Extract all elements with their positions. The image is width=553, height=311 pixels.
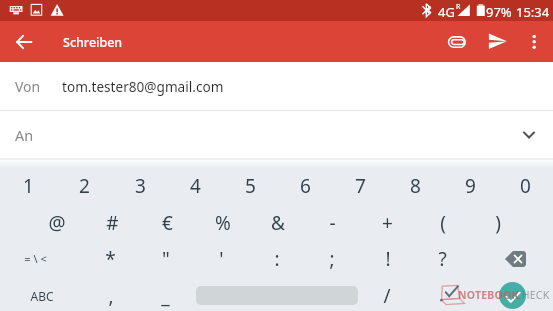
- staticText: 15:34: [516, 3, 550, 21]
- staticText: 2: [79, 173, 90, 199]
- staticText: 4: [190, 173, 201, 199]
- button[interactable]: 3: [112, 167, 168, 204]
- button[interactable]: Attach: [442, 28, 470, 56]
- staticText: Von: [15, 77, 41, 96]
- button[interactable]: +: [360, 204, 415, 241]
- button[interactable]: -: [305, 204, 360, 241]
- button[interactable]: ABC: [0, 277, 83, 311]
- button[interactable]: Backspace: [470, 240, 553, 277]
- staticText: %: [215, 210, 231, 236]
- staticText: 9: [465, 173, 476, 199]
- button[interactable]: ,: [83, 277, 138, 311]
- staticText: tom.tester80@gmail.com: [62, 77, 224, 96]
- staticText: !: [385, 246, 391, 272]
- button[interactable]: Send: [484, 28, 512, 56]
- staticText: 7: [355, 173, 366, 199]
- staticText: 6: [300, 173, 311, 199]
- staticText: _: [161, 283, 170, 309]
- staticText: -: [329, 210, 336, 236]
- staticText: (: [440, 210, 446, 236]
- button[interactable]: :: [249, 240, 304, 277]
- button[interactable]: An: [0, 111, 553, 159]
- button[interactable]: 4: [168, 167, 223, 204]
- button[interactable]: &: [250, 204, 305, 241]
- staticText: CHECK: [515, 288, 550, 302]
- button[interactable]: #: [85, 204, 140, 241]
- button[interactable]: %: [195, 204, 250, 241]
- button[interactable]: ': [194, 240, 249, 277]
- staticText: 3: [135, 173, 146, 199]
- staticText: 5: [245, 173, 256, 199]
- button[interactable]: /: [359, 277, 414, 311]
- button[interactable]: More options: [520, 28, 548, 56]
- staticText: ?: [438, 246, 447, 272]
- staticText: ;: [329, 246, 335, 272]
- staticText: An: [15, 125, 34, 145]
- staticText: €: [162, 210, 173, 236]
- staticText: ): [495, 210, 501, 236]
- staticText: 4G: [438, 3, 455, 21]
- button[interactable]: 6: [278, 167, 333, 204]
- button[interactable]: ): [470, 204, 525, 241]
- button[interactable]: Space: [194, 277, 360, 311]
- button[interactable]: *: [83, 240, 138, 277]
- button[interactable]: ": [138, 240, 193, 277]
- staticText: ": [162, 246, 170, 272]
- staticText: 1: [23, 173, 34, 199]
- staticText: /: [383, 283, 391, 309]
- staticText: ,: [108, 283, 114, 309]
- button[interactable]: 7: [333, 167, 388, 204]
- staticText: @: [48, 210, 66, 236]
- button[interactable]: !: [360, 240, 415, 277]
- button[interactable]: Von: [0, 62, 553, 111]
- button[interactable]: Enter: [415, 277, 553, 311]
- staticText: 8: [410, 173, 421, 199]
- button[interactable]: ;: [304, 240, 359, 277]
- button[interactable]: 9: [443, 167, 498, 204]
- button[interactable]: Back: [10, 28, 38, 56]
- button[interactable]: 1: [0, 167, 56, 204]
- staticText: :: [274, 246, 280, 272]
- button[interactable]: _: [138, 277, 193, 311]
- staticText: ': [219, 246, 224, 272]
- button[interactable]: 2: [56, 167, 112, 204]
- staticText: 0: [520, 173, 531, 199]
- button[interactable]: 8: [388, 167, 443, 204]
- staticText: NOTEBOOK: [458, 288, 519, 302]
- button[interactable]: €: [140, 204, 195, 241]
- button[interactable]: @: [29, 204, 85, 241]
- staticText: +: [382, 210, 393, 236]
- button[interactable]: 5: [223, 167, 278, 204]
- staticText: Schreiben: [63, 34, 123, 51]
- staticText: &: [271, 210, 285, 236]
- staticText: #: [106, 210, 119, 236]
- button[interactable]: = \ <: [0, 240, 70, 277]
- staticText: 97%: [486, 3, 512, 21]
- button[interactable]: 0: [498, 167, 553, 204]
- staticText: = \ <: [24, 251, 47, 266]
- staticText: R: [456, 2, 461, 12]
- staticText: ABC: [30, 288, 54, 304]
- button[interactable]: ?: [415, 240, 470, 277]
- staticText: *: [105, 246, 116, 272]
- button[interactable]: (: [415, 204, 470, 241]
